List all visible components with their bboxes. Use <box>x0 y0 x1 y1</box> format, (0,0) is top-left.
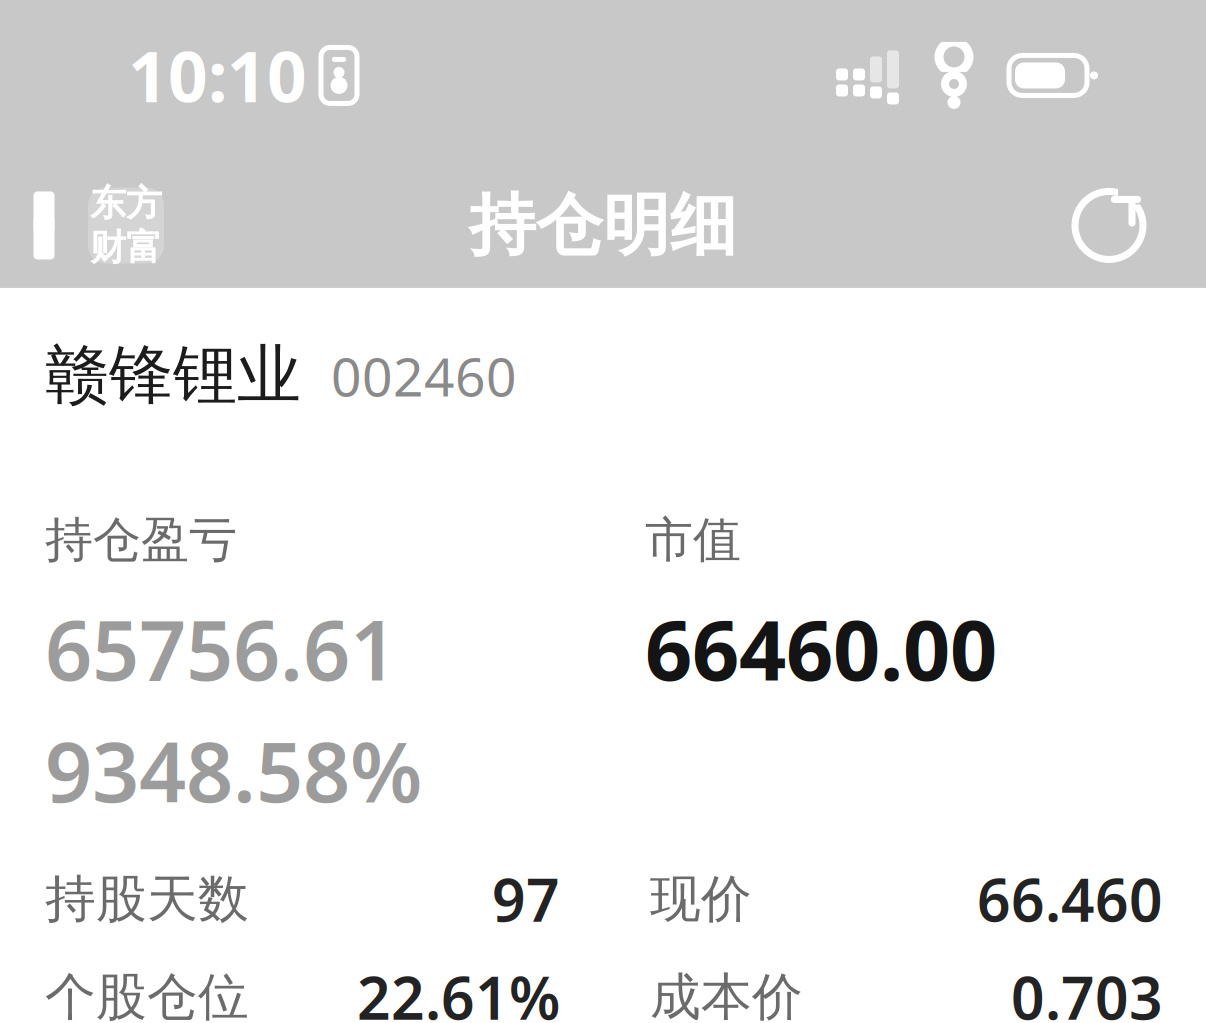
staticText: 97 <box>492 860 560 938</box>
staticText: 9348.58% <box>45 715 422 825</box>
staticText: 市值 <box>645 510 741 569</box>
staticText: 10:10 <box>128 29 307 121</box>
staticText: 东方 <box>90 181 162 225</box>
staticText: 22.61% <box>357 958 560 1023</box>
staticText: 002460 <box>331 340 517 411</box>
staticText: 持仓明细 <box>469 184 737 266</box>
staticText: 65756.61 <box>45 593 397 703</box>
staticText: 持股天数 <box>45 868 249 930</box>
staticText: 赣锋锂业 <box>45 336 301 414</box>
staticText: 66460.00 <box>645 593 997 703</box>
staticText: 个股仓位 <box>45 966 249 1023</box>
staticText: 现价 <box>650 868 752 930</box>
staticText: 财富 <box>90 225 162 270</box>
staticText: 66.460 <box>977 860 1163 938</box>
staticText: 0.703 <box>1011 958 1163 1023</box>
staticText: 持仓盈亏 <box>45 510 237 569</box>
button[interactable]: 返回 东方财富 <box>0 177 164 273</box>
staticText: 成本价 <box>650 966 803 1023</box>
button[interactable]: 刷新 <box>1064 170 1206 280</box>
